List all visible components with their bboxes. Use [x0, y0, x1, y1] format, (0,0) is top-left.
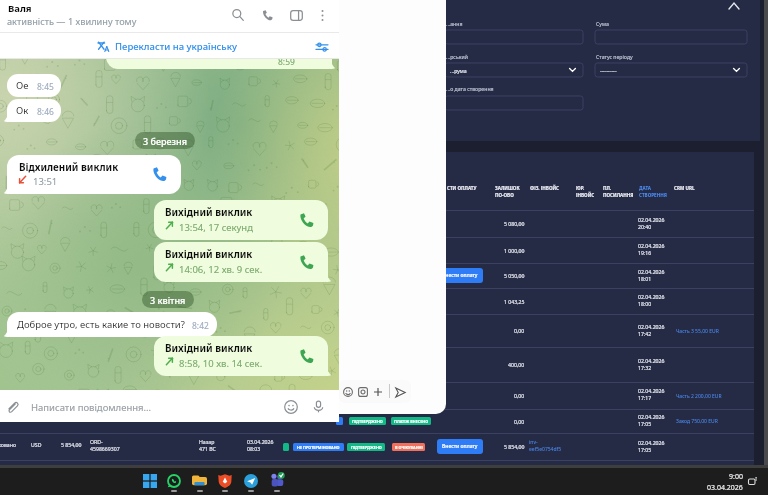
button[interactable]: Translate settings [315, 40, 329, 54]
button[interactable]: Attach file [4, 399, 20, 415]
staticText: 02.04.2026 [638, 216, 665, 223]
staticText: 8:46 [37, 106, 54, 118]
button[interactable]: Search [230, 7, 246, 23]
button[interactable] [445, 96, 583, 110]
button[interactable]: Emoji [343, 387, 353, 397]
button[interactable]: Внести оплату [437, 439, 483, 454]
button[interactable] [336, 417, 343, 425]
staticText: 5 854,00 [504, 443, 525, 450]
staticText: USD [31, 441, 42, 448]
button[interactable]: Attach [373, 387, 383, 397]
staticText: Ое [16, 79, 29, 92]
staticText: 1 000,00 [504, 247, 525, 254]
staticText: Написати повідомлення... [31, 401, 152, 414]
staticText: 471 BC [199, 445, 216, 452]
staticText: 1 043,25 [504, 298, 525, 305]
staticText: 02.04.2026 [638, 357, 665, 364]
button[interactable]: ПЛАТІЖ ВНЕСЕНО [391, 417, 431, 425]
button[interactable]: Внести оплату [437, 268, 483, 283]
button[interactable]: Доброе утро, есть какие то новости? [7, 312, 217, 337]
button[interactable]: Start [140, 471, 159, 490]
staticText: ...ання [446, 20, 463, 27]
staticText: Сума [596, 20, 609, 27]
staticText: 5 854,00 [61, 441, 82, 448]
staticText: Вихідний виклик [165, 342, 253, 355]
button[interactable] [445, 30, 583, 44]
button[interactable]: В ОЧІКУВАННІ [392, 443, 425, 451]
button[interactable]: Info panel [288, 7, 304, 23]
button[interactable]: Вихідний виклик [154, 336, 328, 376]
staticText: 8:45 [37, 81, 54, 93]
staticText: CRM URL [674, 185, 695, 191]
button[interactable]: Notifications [747, 476, 758, 487]
staticText: ПІДТВЕРДЖЕНО [352, 419, 383, 424]
staticText: Часть 2 200,00 EUR [676, 393, 722, 400]
staticText: 5 080,00 [504, 220, 525, 227]
staticText: ПО-ОВО [495, 192, 514, 198]
button[interactable] [283, 443, 289, 451]
staticText: 0,00 [514, 418, 525, 425]
staticText: 0,00 [514, 392, 525, 399]
staticText: ---------- [600, 67, 617, 74]
button[interactable]: Вихідний виклик [154, 242, 328, 282]
button[interactable]: File Explorer [190, 471, 209, 490]
staticText: ПІДТВЕРДЖЕНО [351, 445, 382, 450]
staticText: 14:06, 12 хв. 9 сек. [179, 263, 263, 276]
button[interactable]: НЕ ПРОТЕРМІНОВАНО [293, 443, 344, 451]
staticText: ...рський [446, 53, 468, 60]
staticText: 02.04.2026 [638, 387, 665, 394]
button[interactable]: Stickers [358, 387, 368, 397]
staticText: 8:58, 10 хв. 14 сек. [179, 357, 263, 370]
button[interactable]: Ок [7, 99, 61, 122]
staticText: 02.04.2026 [638, 439, 665, 446]
button[interactable]: ---------- [595, 63, 747, 77]
staticText: 17:17 [638, 394, 652, 401]
staticText: В ОЧІКУВАННІ [395, 445, 423, 450]
staticText: ORD- [90, 438, 103, 445]
staticText: Відхилений виклик [19, 161, 119, 174]
staticText: Внести оплату [442, 443, 478, 450]
staticText: Назар [199, 438, 215, 445]
staticText: 8:59 [278, 59, 295, 68]
button[interactable]: Ое [7, 74, 61, 97]
button[interactable]: ПІДТВЕРДЖЕНО [347, 443, 385, 451]
staticText: 19:16 [638, 249, 652, 256]
button[interactable]: Send [395, 387, 406, 398]
button[interactable]: WhatsApp [164, 471, 183, 490]
button[interactable]: Call [259, 7, 275, 23]
button[interactable]: Microsoft Teams [267, 471, 286, 490]
staticText: Вихідний виклик [165, 206, 253, 219]
staticText: 3 березня [143, 135, 187, 147]
button[interactable]: 3 березня [135, 132, 195, 149]
staticText: Заход 750,00 EUR [676, 418, 718, 425]
button[interactable]: Вихідний виклик [154, 200, 328, 240]
staticText: Валя [8, 2, 32, 15]
staticText: 03.04.2026 [247, 438, 274, 445]
staticText: ...о дата створення [446, 85, 494, 92]
staticText: 08:03 [247, 445, 261, 452]
staticText: ІНВОЙС [576, 192, 595, 198]
staticText: 400,00 [508, 361, 525, 368]
staticText: Доброе утро, есть какие то новости? [17, 318, 185, 331]
button[interactable]: More options [314, 7, 330, 23]
staticText: 17:42 [638, 330, 652, 337]
staticText: ПЛАТІЖ ВНЕСЕНО [394, 419, 429, 424]
button[interactable]: Voice message [311, 399, 326, 414]
button[interactable]: Emoji [283, 399, 298, 414]
button[interactable] [595, 30, 747, 44]
staticText: Часть 3 55,00 EUR [676, 328, 719, 335]
staticText: 9:00 [729, 472, 743, 482]
button[interactable]: Перекласти на українську [0, 34, 339, 59]
button[interactable]: Telegram [241, 471, 260, 490]
button[interactable]: 3 квітня [142, 291, 194, 308]
staticText: НЕ ПРОТЕРМІНОВАНО [297, 445, 340, 450]
staticText: 18:00 [638, 300, 652, 307]
staticText: 17:05 [638, 420, 652, 427]
staticText: Вихідний виклик [165, 248, 253, 261]
button[interactable]: ПІДТВЕРДЖЕНО [349, 417, 386, 425]
button[interactable]: Відхилений виклик [7, 155, 181, 194]
button[interactable]: Brave browser [215, 471, 234, 490]
button[interactable]: ...рума [445, 63, 583, 77]
